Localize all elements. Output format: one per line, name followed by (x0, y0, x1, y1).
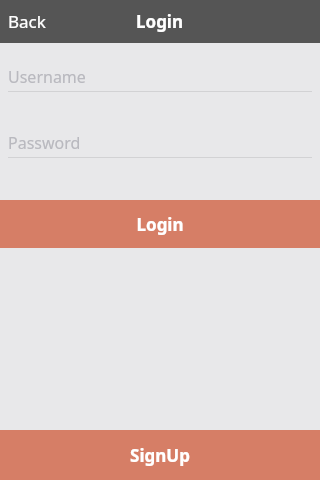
staticText: Login (136, 10, 184, 33)
button[interactable]: Login (0, 200, 320, 248)
button[interactable]: Username (0, 64, 320, 92)
staticText: Username (8, 66, 86, 88)
staticText: Back (8, 10, 46, 33)
button[interactable]: Password (0, 130, 320, 158)
button[interactable]: SignUp (0, 430, 320, 480)
staticText: Login (136, 213, 184, 236)
button[interactable]: Back (0, 4, 54, 39)
staticText: Password (8, 132, 81, 154)
staticText: SignUp (130, 444, 190, 467)
